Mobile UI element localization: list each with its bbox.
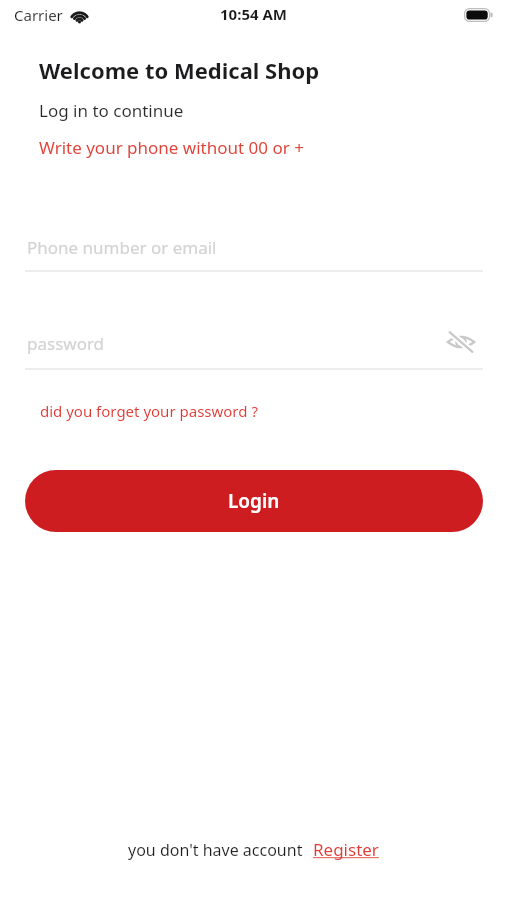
button[interactable]: Phone number or email <box>25 222 483 272</box>
button[interactable]: Register <box>313 838 379 861</box>
staticText: Phone number or email <box>27 236 217 259</box>
staticText: Register <box>313 838 379 861</box>
staticText: Carrier <box>14 5 63 25</box>
staticText: Login <box>228 488 280 514</box>
staticText: you don't have account <box>128 839 303 861</box>
staticText: password <box>27 332 105 355</box>
staticText: Welcome to Medical Shop <box>39 55 320 85</box>
button[interactable]: did you forget your password ? <box>34 396 264 426</box>
button[interactable]: Show password <box>438 319 484 365</box>
staticText: Write your phone without 00 or + <box>39 136 304 159</box>
button[interactable]: password <box>25 318 483 368</box>
staticText: 10:54 AM <box>220 4 287 24</box>
staticText: Log in to continue <box>39 99 184 122</box>
staticText: did you forget your password ? <box>40 401 258 421</box>
button[interactable]: Login <box>25 470 483 532</box>
